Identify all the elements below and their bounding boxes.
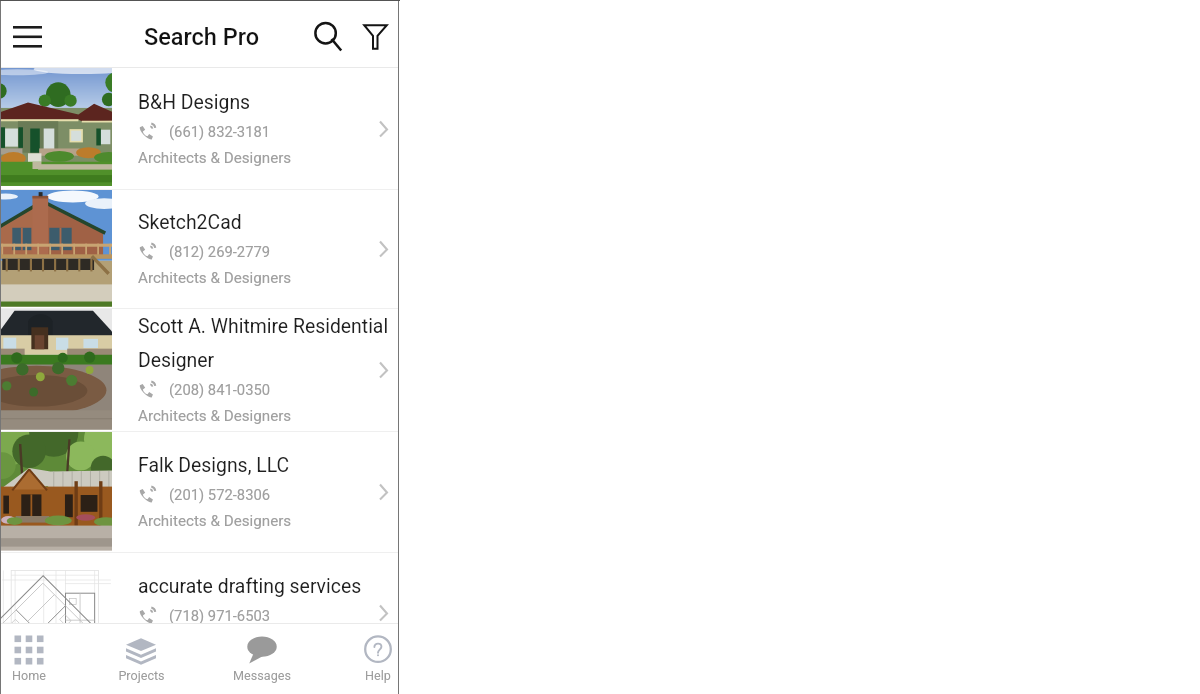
staticText: (718) 971-6503 (169, 607, 271, 624)
button[interactable]: Help (328, 624, 399, 694)
button[interactable]: Open details (367, 354, 399, 386)
button[interactable]: Home (0, 624, 79, 694)
button[interactable]: Messages (212, 624, 312, 694)
button[interactable]: Filter (352, 11, 398, 59)
staticText: Architects & Designers (138, 512, 292, 530)
staticText: (661) 832-3181 (169, 123, 271, 140)
staticText: Architects & Designers (138, 269, 292, 287)
staticText: Help (365, 668, 391, 683)
button[interactable]: Open details (367, 113, 399, 145)
staticText: Architects & Designers (138, 407, 292, 425)
staticText: Sketch2Cad (138, 211, 242, 234)
staticText: Search Pro (144, 23, 260, 51)
button[interactable]: Menu (3, 12, 51, 60)
staticText: Architects & Designers (138, 633, 292, 651)
staticText: B&H Designs (138, 91, 251, 114)
button[interactable]: B&H Designs (0, 68, 399, 189)
button[interactable]: Sketch2Cad (0, 190, 399, 308)
button[interactable]: Falk Designs, LLC (0, 432, 399, 552)
staticText: Falk Designs, LLC (138, 454, 290, 477)
button[interactable]: Open details (367, 476, 399, 508)
staticText: Home (12, 668, 46, 683)
button[interactable]: Projects (91, 624, 191, 694)
staticText: (208) 841-0350 (169, 381, 271, 398)
staticText: accurate drafting services (138, 575, 362, 598)
button[interactable]: accurate drafting services (0, 553, 399, 673)
staticText: Scott A. Whitmire Residential Designer (138, 315, 390, 372)
button[interactable]: Search (303, 10, 349, 58)
staticText: (201) 572-8306 (169, 486, 271, 503)
staticText: Architects & Designers (138, 149, 292, 167)
staticText: Projects (118, 668, 165, 683)
button[interactable]: Open details (367, 233, 399, 265)
staticText: (812) 269-2779 (169, 243, 271, 260)
staticText: Messages (233, 668, 291, 683)
button[interactable]: Scott A. Whitmire Residential Designer (0, 309, 399, 431)
button[interactable]: Open details (367, 597, 399, 629)
